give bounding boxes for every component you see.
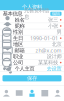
button[interactable]: 编辑 <box>50 12 61 16</box>
button[interactable]: 个人主页 <box>0 66 64 72</box>
staticText: 地区 <box>13 41 23 48</box>
button[interactable]: 昵称 <box>0 23 64 29</box>
staticText: 完善资料信息 <box>24 7 49 20</box>
button[interactable]: 地区 <box>0 41 64 47</box>
staticText: 张三 <box>48 17 58 23</box>
staticText: 邮箱 <box>14 47 24 54</box>
button[interactable]: 性别 <box>0 29 64 35</box>
staticText: 个人资料 <box>22 4 42 10</box>
staticText: 编辑 <box>52 11 60 16</box>
staticText: 基本信息 <box>2 10 22 17</box>
staticText: 去设置 <box>46 65 61 72</box>
staticText: 某某科技 <box>38 59 58 66</box>
staticText: 设计师 <box>46 53 61 60</box>
staticText: 个人主页 <box>14 65 34 72</box>
button[interactable]: Tab 5 <box>51 86 64 100</box>
staticText: 北京 <box>51 41 61 48</box>
staticText: 1990-01-01 <box>30 35 58 42</box>
staticText: zh@x.com <box>35 47 61 54</box>
button[interactable]: 保存 <box>2 75 61 81</box>
button[interactable]: Tab 2 <box>13 86 26 100</box>
button[interactable]: 生日 <box>0 35 64 41</box>
button[interactable]: Tab 3 <box>26 86 38 100</box>
button[interactable]: Tab 1 <box>0 86 13 100</box>
staticText: 昵称 <box>14 23 24 29</box>
button[interactable]: 姓名 <box>0 17 64 23</box>
staticText: 公司 <box>13 59 23 66</box>
staticText: 小张 <box>48 23 58 29</box>
button[interactable]: 邮箱 <box>0 47 64 54</box>
staticText: 职业 <box>13 53 23 60</box>
button[interactable]: 职业 <box>0 54 64 60</box>
staticText: 性别 <box>13 29 23 35</box>
staticText: 姓名 <box>14 17 24 23</box>
button[interactable]: Tab 4 <box>38 86 51 100</box>
button[interactable]: 公司 <box>0 60 64 66</box>
staticText: 保存 <box>27 75 37 82</box>
staticText: 生日 <box>13 35 23 41</box>
staticText: 男 <box>56 29 61 35</box>
